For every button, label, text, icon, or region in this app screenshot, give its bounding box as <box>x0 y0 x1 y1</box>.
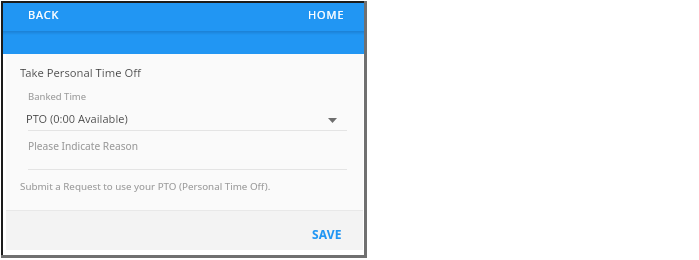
staticText: Please Indicate Reason <box>28 139 138 153</box>
staticText: HOME <box>308 7 345 22</box>
staticText: Take Personal Time Off <box>20 65 141 80</box>
button[interactable]: BACK <box>23 3 65 26</box>
button[interactable]: HOME <box>303 3 350 26</box>
staticText: SAVE <box>312 226 342 242</box>
staticText: BACK <box>28 7 60 22</box>
staticText: Banked Time <box>28 90 87 103</box>
staticText: Submit a Request to use your PTO (Person… <box>20 180 271 193</box>
button[interactable]: Banked Time selector <box>26 111 337 126</box>
button[interactable]: SAVE <box>307 221 347 247</box>
staticText: PTO (0:00 Available) <box>26 111 128 126</box>
